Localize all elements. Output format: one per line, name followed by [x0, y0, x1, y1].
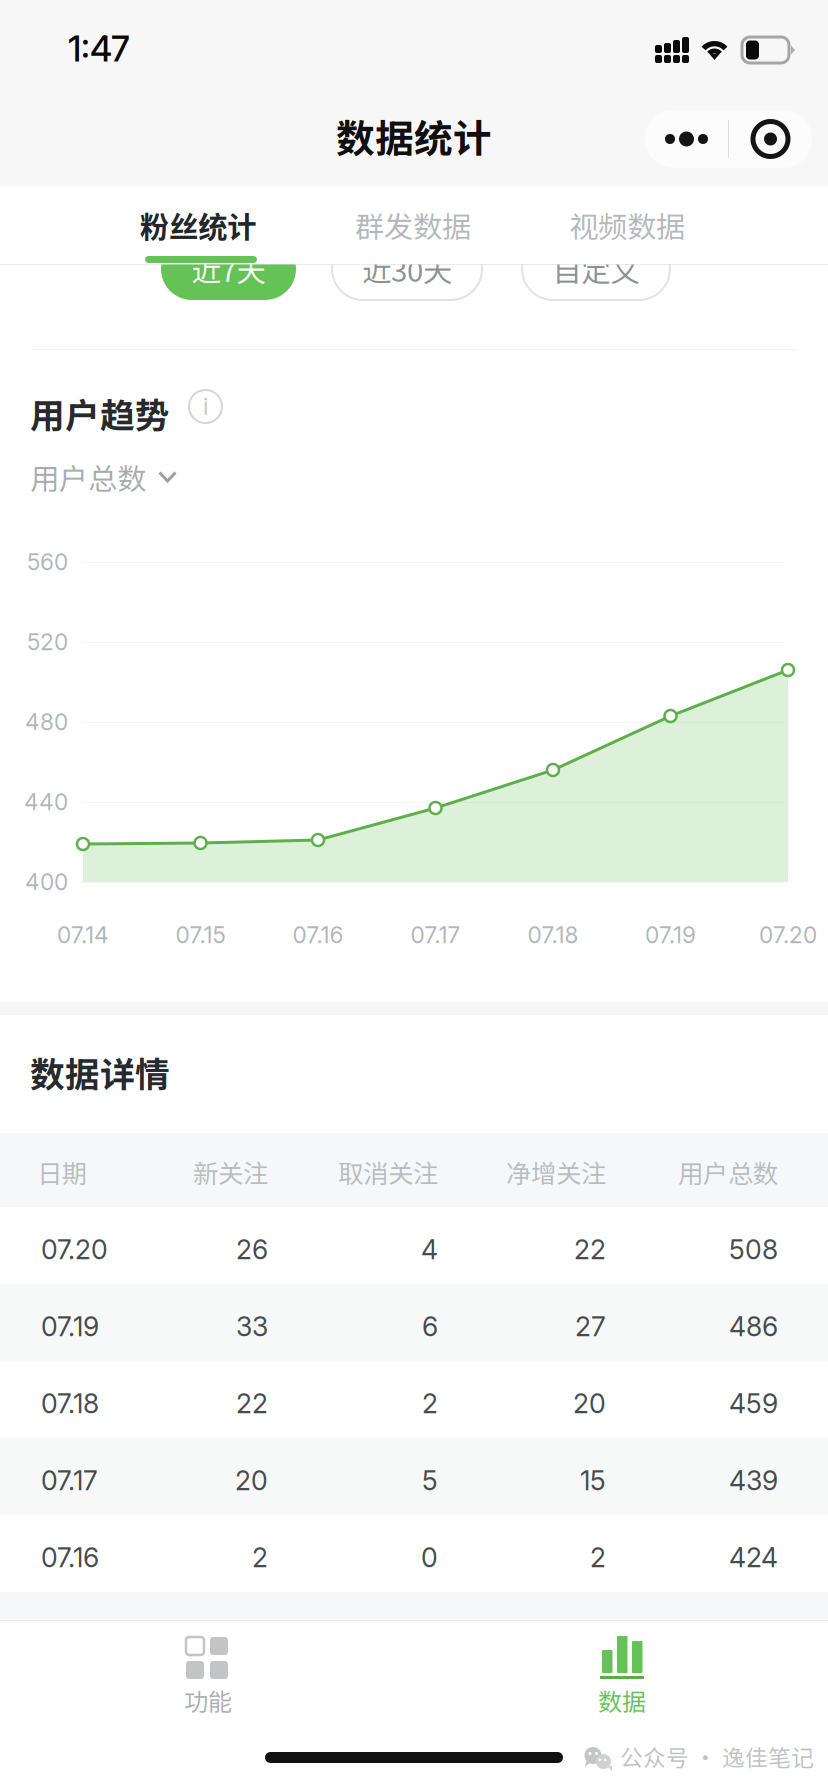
staticText: 07.16 — [292, 921, 343, 949]
staticText: 480 — [25, 708, 68, 736]
button[interactable]: 粉丝统计 — [93, 186, 303, 264]
staticText: 07.17 — [410, 921, 460, 949]
staticText: 07.19 — [645, 921, 696, 949]
staticText: 功能 — [184, 1683, 232, 1718]
staticText: 用户总数 — [678, 1154, 778, 1190]
button[interactable]: 用户总数 — [30, 460, 177, 494]
button[interactable]: 数据 — [414, 1621, 828, 1731]
staticText: 520 — [27, 628, 68, 656]
staticText: 22 — [574, 1233, 606, 1266]
staticText: 424 — [729, 1541, 778, 1574]
staticText: 20 — [235, 1464, 268, 1497]
staticText: 07.15 — [175, 921, 225, 949]
staticText: 公众号 · 逸佳笔记 — [620, 1740, 814, 1773]
button[interactable]: 群发数据 — [308, 186, 518, 264]
staticText: 净增关注 — [506, 1154, 606, 1190]
staticText: 自定义 — [552, 248, 639, 290]
staticText: 07.17 — [41, 1464, 98, 1497]
staticText: 27 — [575, 1310, 606, 1343]
button[interactable]: 自定义 — [522, 238, 670, 300]
staticText: 新关注 — [193, 1154, 268, 1190]
staticText: 粉丝统计 — [140, 204, 256, 246]
staticText: 15 — [580, 1464, 606, 1497]
button[interactable]: About this chart — [189, 390, 222, 423]
button[interactable]: 视频数据 — [522, 186, 732, 264]
staticText: 486 — [729, 1310, 778, 1343]
staticText: 0 — [421, 1541, 438, 1574]
staticText: 26 — [236, 1233, 268, 1266]
staticText: 07.20 — [759, 921, 817, 949]
staticText: 取消关注 — [338, 1154, 438, 1190]
staticText: 440 — [24, 788, 68, 816]
staticText: 6 — [422, 1310, 438, 1343]
staticText: 2 — [422, 1387, 438, 1420]
staticText: 数据统计 — [336, 108, 492, 164]
staticText: 数据 — [598, 1683, 646, 1718]
staticText: 1:47 — [68, 28, 130, 70]
staticText: i — [203, 393, 208, 420]
staticText: 2 — [590, 1541, 606, 1574]
staticText: 439 — [729, 1464, 778, 1497]
button[interactable]: 近30天 — [332, 238, 482, 300]
staticText: 20 — [573, 1387, 606, 1420]
staticText: 日期 — [37, 1154, 87, 1190]
staticText: 07.16 — [41, 1541, 99, 1574]
staticText: 5 — [422, 1464, 438, 1497]
staticText: 07.14 — [57, 921, 109, 949]
staticText: 视频数据 — [569, 204, 685, 246]
button[interactable]: 近7天 — [161, 238, 296, 300]
button[interactable]: Close mini program — [729, 110, 812, 168]
staticText: 用户趋势 — [30, 388, 170, 438]
staticText: 数据详情 — [30, 1047, 170, 1097]
staticText: 近30天 — [362, 248, 452, 290]
staticText: 22 — [236, 1387, 268, 1420]
staticText: 459 — [729, 1387, 778, 1420]
staticText: 2 — [252, 1541, 268, 1574]
staticText: 群发数据 — [355, 204, 471, 246]
staticText: 近7天 — [191, 248, 265, 290]
button[interactable]: 功能 — [0, 1621, 414, 1731]
staticText: 用户总数 — [30, 456, 146, 498]
button[interactable]: More options — [645, 110, 728, 168]
staticText: 560 — [27, 548, 68, 576]
staticText: 07.20 — [41, 1233, 108, 1266]
staticText: 400 — [25, 868, 68, 896]
staticText: 07.18 — [41, 1387, 99, 1420]
staticText: 4 — [421, 1233, 438, 1266]
staticText: 07.18 — [527, 921, 578, 949]
staticText: 508 — [729, 1233, 778, 1266]
staticText: 07.19 — [41, 1310, 99, 1343]
staticText: 33 — [236, 1310, 268, 1343]
